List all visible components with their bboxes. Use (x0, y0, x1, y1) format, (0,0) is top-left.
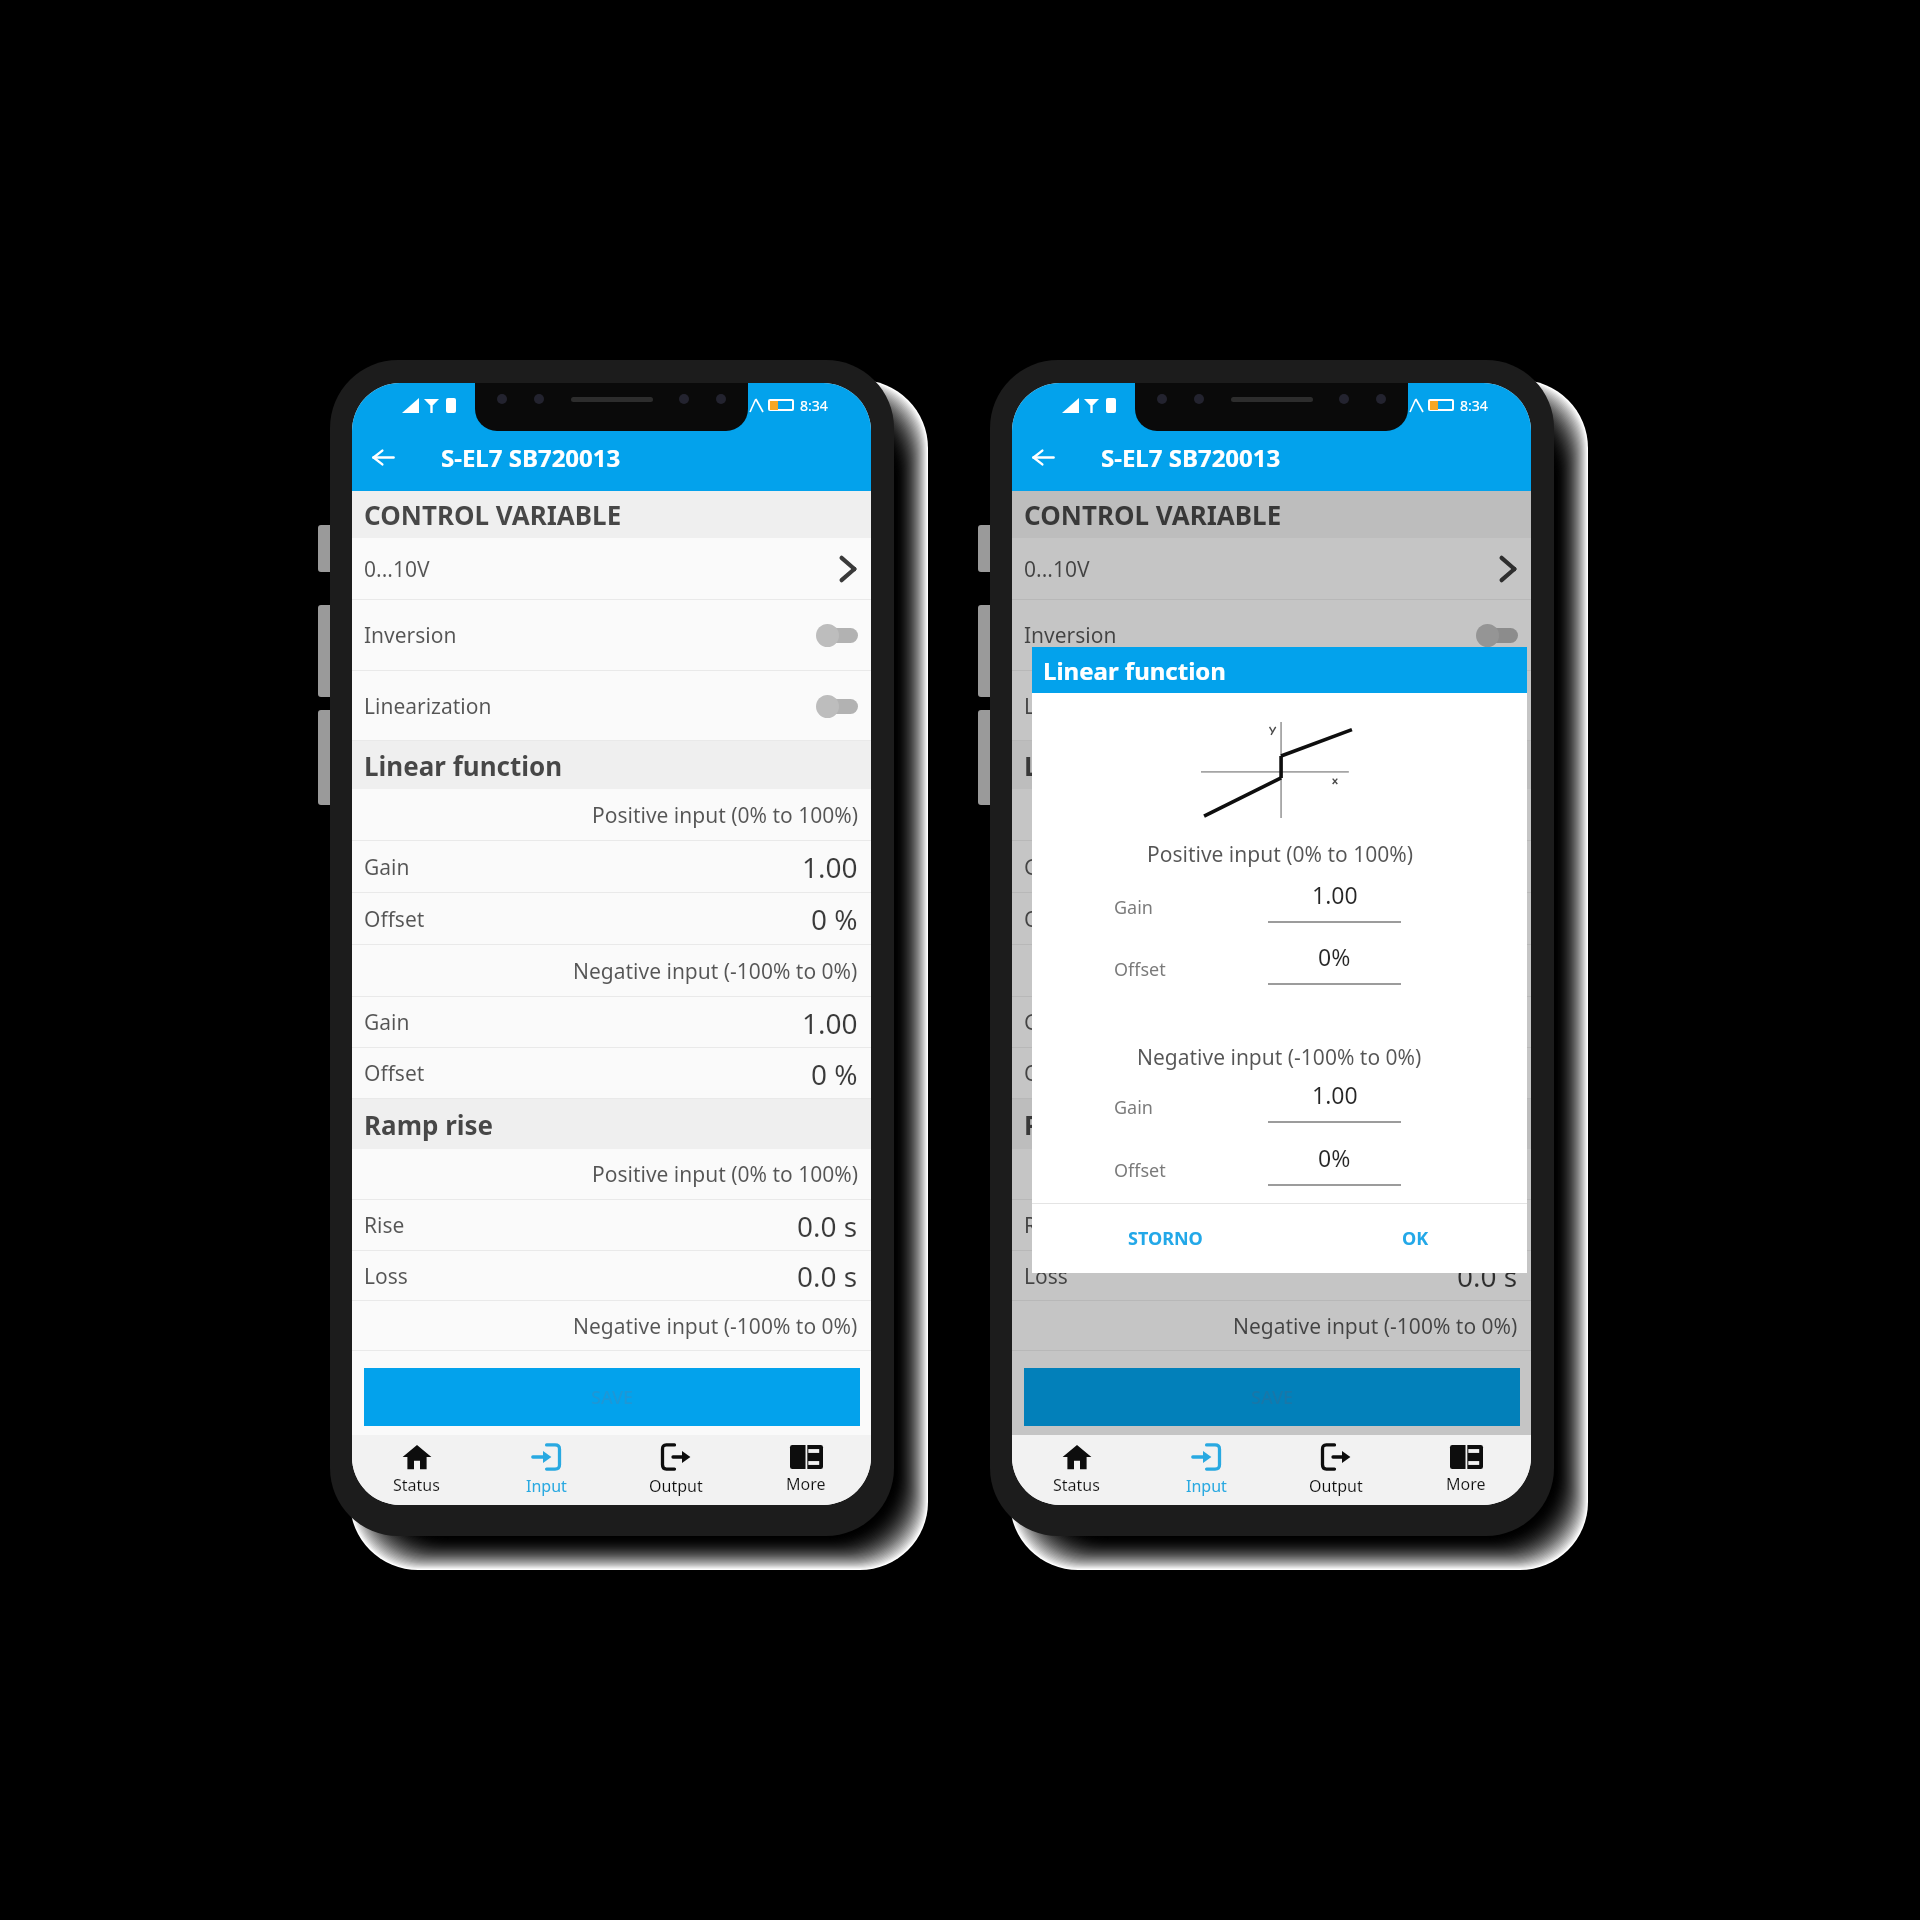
staticText: Rise (364, 1211, 405, 1240)
staticText: S-EL7 SB720013 (1101, 441, 1281, 474)
staticText: 1.00 (1312, 879, 1358, 910)
staticText: S-EL7 SB720013 (441, 441, 621, 474)
staticText: Ramp rise (364, 1107, 494, 1142)
button[interactable]: Output (611, 1435, 741, 1505)
staticText: Output (649, 1475, 703, 1497)
staticText: Inversion (1024, 621, 1117, 650)
staticText: Gain (364, 853, 410, 882)
staticText: Ramp rise (1024, 1107, 1154, 1142)
staticText: Negative input (-100% to 0%) (1137, 1043, 1422, 1072)
button[interactable]: Gain field (1268, 1079, 1401, 1110)
button[interactable]: More (1401, 1435, 1531, 1505)
button[interactable]: Loss (352, 1251, 871, 1301)
staticText: Positive input (0% to 100%) (1252, 801, 1518, 830)
button[interactable]: Offset (352, 893, 871, 945)
staticText: 1.00 (1312, 1079, 1358, 1110)
button[interactable]: Rise (1012, 1200, 1531, 1251)
button[interactable]: Offset (1012, 893, 1531, 945)
staticText: STORNO (1128, 1226, 1203, 1251)
staticText: SAVE (591, 1385, 634, 1410)
staticText: CONTROL VARIABLE (1024, 497, 1282, 532)
staticText: Positive input (0% to 100%) (1252, 1160, 1518, 1189)
staticText: Negative input (-100% to 0%) (573, 957, 858, 986)
button[interactable]: Input (481, 1435, 611, 1505)
staticText: Input (526, 1475, 567, 1497)
staticText: 0.0 s (1457, 1257, 1518, 1295)
staticText: Linear function (364, 748, 563, 783)
button[interactable]: Back (352, 423, 414, 491)
staticText: Linearization (1024, 692, 1152, 721)
button[interactable]: STORNO (1116, 1216, 1215, 1261)
button[interactable]: Offset (1012, 1048, 1531, 1099)
button[interactable]: Input (1141, 1435, 1271, 1505)
button[interactable]: 0...10V (1012, 538, 1531, 600)
staticText: SAVE (1251, 1385, 1294, 1410)
staticText: 0...10V (1024, 555, 1090, 584)
button[interactable]: Loss (1012, 1251, 1531, 1301)
staticText: 1.00 (802, 848, 858, 886)
staticText: More (1446, 1473, 1486, 1495)
staticText: Gain (1024, 853, 1070, 882)
staticText: More (786, 1473, 826, 1495)
staticText: Offset (364, 1059, 425, 1088)
button[interactable]: Status (1012, 1435, 1141, 1505)
button[interactable]: OK (1390, 1216, 1441, 1261)
staticText: Linear function (1043, 654, 1226, 687)
staticText: 0.0 s (797, 1257, 858, 1295)
button[interactable]: Gain (352, 997, 871, 1048)
staticText: 8:34 (1460, 396, 1488, 415)
button[interactable]: Output (1271, 1435, 1401, 1505)
button[interactable]: Gain field (1268, 879, 1401, 910)
button[interactable]: Rise (352, 1200, 871, 1251)
button[interactable]: Gain (1012, 841, 1531, 893)
button[interactable]: Linearization (352, 671, 871, 741)
staticText: Offset (1024, 1059, 1085, 1088)
button[interactable]: Status (352, 1435, 481, 1505)
staticText: Gain (1114, 895, 1153, 920)
staticText: 0% (1318, 941, 1351, 972)
button[interactable]: 0...10V (352, 538, 871, 600)
staticText: Offset (1114, 957, 1166, 982)
staticText: Status (393, 1474, 440, 1496)
staticText: Negative input (-100% to 0%) (573, 1312, 858, 1341)
button[interactable]: Gain (352, 841, 871, 893)
button[interactable]: More (741, 1435, 871, 1505)
staticText: Status (1053, 1474, 1100, 1496)
button[interactable]: Inversion (1012, 600, 1531, 671)
button[interactable]: Offset (352, 1048, 871, 1099)
staticText: Output (1309, 1475, 1363, 1497)
staticText: Linear function (1024, 748, 1223, 783)
button[interactable]: Linearization (1012, 671, 1531, 741)
staticText: CONTROL VARIABLE (364, 497, 622, 532)
staticText: Loss (1024, 1262, 1068, 1291)
button[interactable]: Gain (1012, 997, 1531, 1048)
staticText: Gain (364, 1008, 410, 1037)
staticText: Negative input (-100% to 0%) (1233, 1312, 1518, 1341)
button[interactable]: Back (1012, 423, 1074, 491)
staticText: Gain (1114, 1095, 1153, 1120)
button[interactable]: Offset field (1268, 1142, 1401, 1173)
staticText: Offset (1024, 905, 1085, 934)
staticText: Rise (1024, 1211, 1065, 1240)
staticText: OK (1402, 1226, 1429, 1251)
staticText: Inversion (364, 621, 457, 650)
staticText: Negative input (-100% to 0%) (1233, 957, 1518, 986)
staticText: Offset (364, 905, 425, 934)
staticText: 0 % (811, 1055, 858, 1093)
button[interactable]: Offset field (1268, 941, 1401, 972)
staticText: 0 % (811, 900, 858, 938)
staticText: 1.00 (802, 1004, 858, 1042)
staticText: 0...10V (364, 555, 430, 584)
button[interactable]: Inversion (352, 600, 871, 671)
staticText: Gain (1024, 1008, 1070, 1037)
staticText: Positive input (0% to 100%) (1147, 840, 1413, 869)
staticText: 0% (1318, 1142, 1351, 1173)
staticText: 0.0 s (797, 1207, 858, 1245)
